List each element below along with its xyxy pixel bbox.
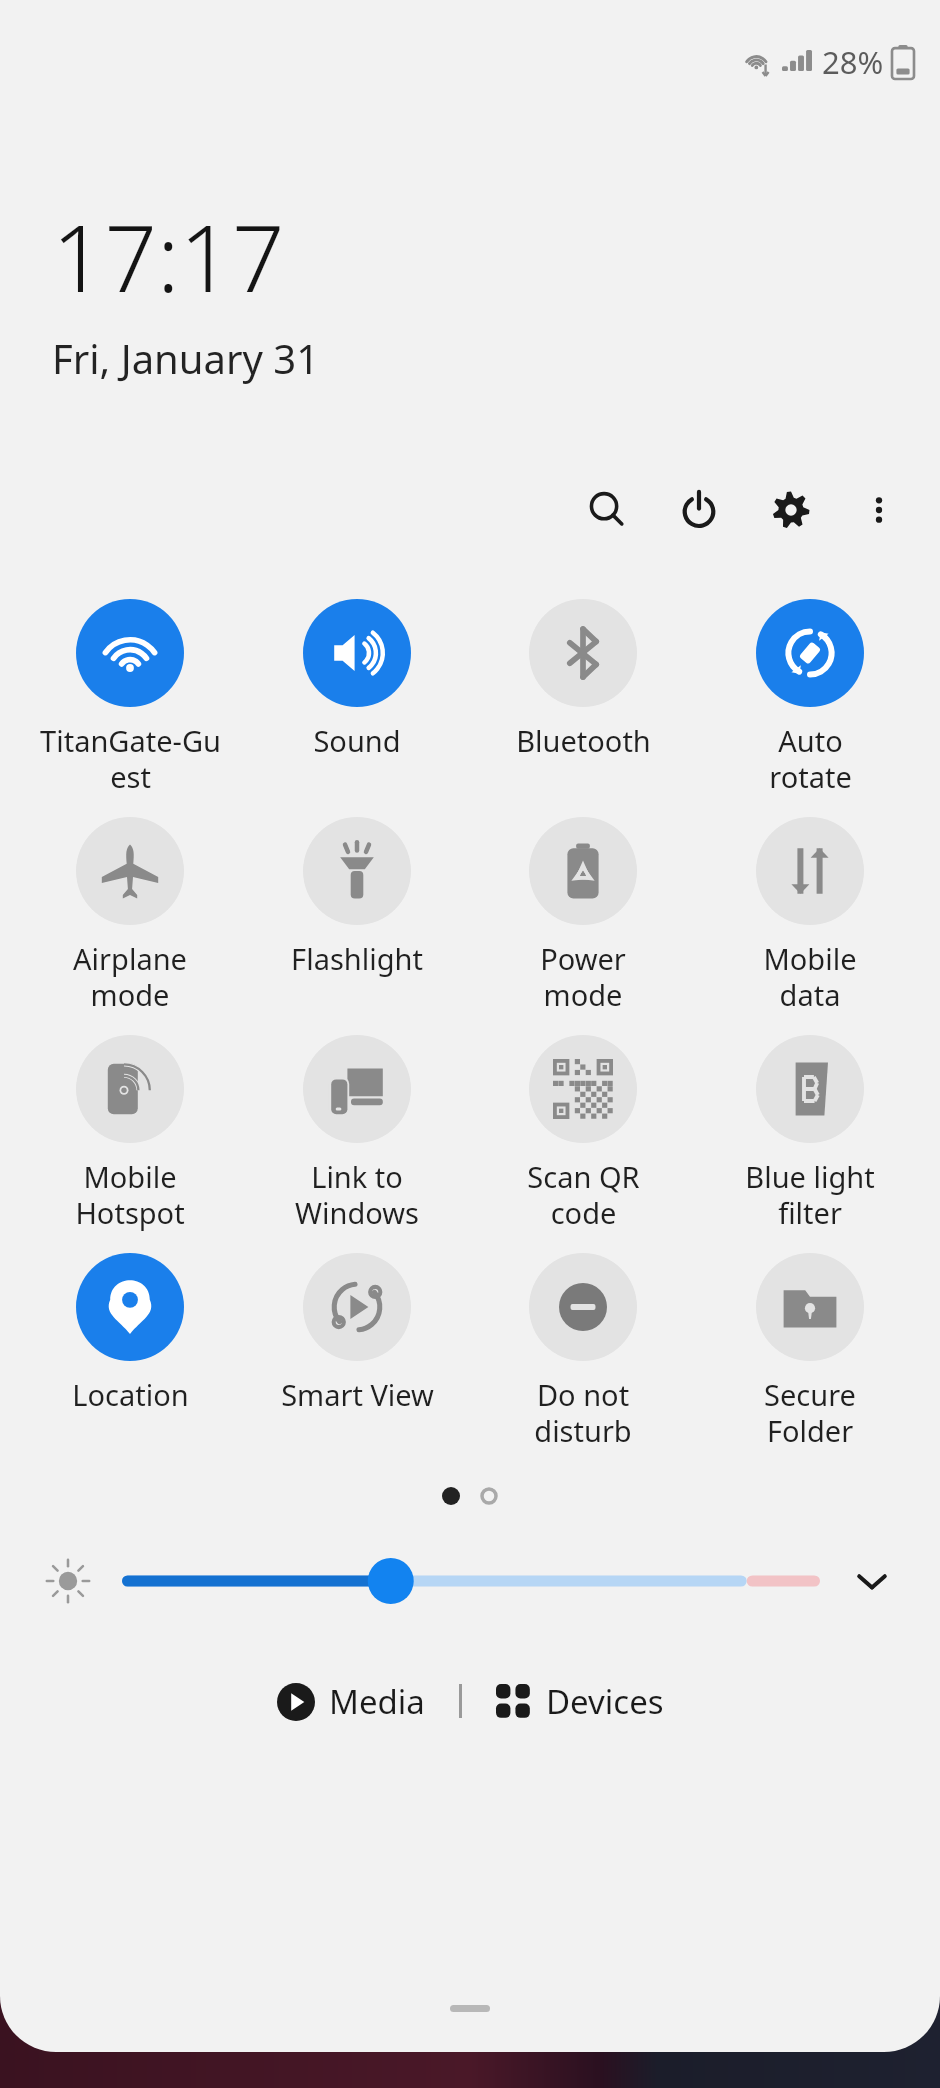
staticText: Devices	[546, 1679, 664, 1724]
staticText: Link to Windows	[295, 1157, 419, 1233]
button[interactable]: Flashlight	[257, 813, 457, 978]
button[interactable]: Settings	[756, 475, 826, 545]
staticText: Location	[72, 1375, 189, 1414]
staticText: Power mode	[540, 939, 626, 1015]
button[interactable]: TitanGate-Gu est	[30, 595, 230, 797]
button[interactable]: Devices	[488, 1673, 672, 1730]
button[interactable]: Do not disturb	[483, 1249, 683, 1451]
button[interactable]: Link to Windows	[257, 1031, 457, 1233]
button[interactable]: Location	[30, 1249, 230, 1414]
button[interactable]: Brightness slider	[122, 1546, 820, 1616]
staticText: Scan QR code	[527, 1157, 640, 1233]
staticText: Mobile Hotspot	[75, 1157, 185, 1233]
staticText: Bluetooth	[516, 721, 651, 760]
staticText: Flashlight	[291, 939, 423, 978]
staticText: Mobile data	[763, 939, 857, 1015]
button[interactable]: Auto rotate	[710, 595, 910, 797]
button[interactable]: Smart View	[257, 1249, 457, 1414]
staticText: Auto rotate	[769, 721, 852, 797]
button[interactable]: Brightness	[36, 1549, 100, 1613]
staticText: 28%	[822, 41, 884, 83]
staticText: Sound	[313, 721, 401, 760]
staticText: 17:17	[52, 194, 285, 319]
button[interactable]: More options	[844, 475, 914, 545]
button[interactable]: Expand brightness settings	[840, 1549, 904, 1613]
staticText: Media	[329, 1679, 425, 1724]
button[interactable]: Secure Folder	[710, 1249, 910, 1451]
button[interactable]: Power off	[664, 475, 734, 545]
staticText: Blue light filter	[745, 1157, 875, 1233]
button[interactable]: Media	[269, 1673, 433, 1730]
button[interactable]: Airplane mode	[30, 813, 230, 1015]
staticText: Airplane mode	[73, 939, 187, 1015]
button[interactable]: Bluetooth	[483, 595, 683, 760]
button[interactable]: Scan QR code	[483, 1031, 683, 1233]
button[interactable]: Blue light filter	[710, 1031, 910, 1233]
button[interactable]: Mobile Hotspot	[30, 1031, 230, 1233]
button[interactable]: Sound	[257, 595, 457, 760]
staticText: Fri, January 31	[52, 331, 320, 385]
button[interactable]: Mobile data	[710, 813, 910, 1015]
button[interactable]: Search	[572, 475, 642, 545]
staticText: Do not disturb	[534, 1375, 632, 1451]
staticText: TitanGate-Gu est	[40, 721, 221, 797]
staticText: Secure Folder	[764, 1375, 856, 1451]
staticText: Smart View	[281, 1375, 434, 1414]
button[interactable]: Power mode	[483, 813, 683, 1015]
